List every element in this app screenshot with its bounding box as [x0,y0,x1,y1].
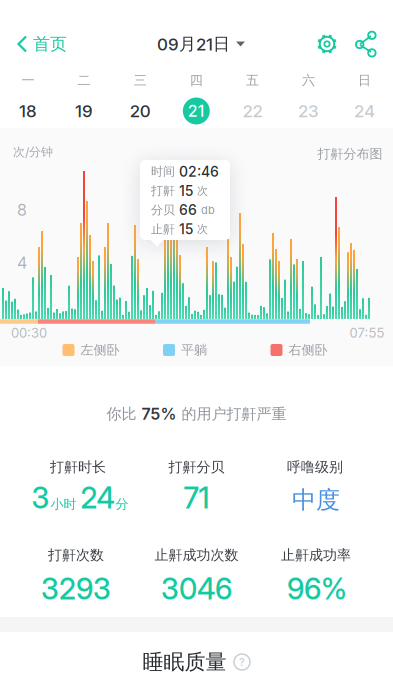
button[interactable]: 三 [112,65,168,131]
staticText: 中度 [292,485,340,515]
staticText: 20 [130,101,151,121]
staticText: 21 [188,101,205,120]
staticText: 六 [302,72,315,88]
staticText: 打鼾分布图 [317,146,382,162]
staticText: 4 [17,254,27,272]
staticText: 次/分钟 [13,145,53,159]
staticText: 8 [17,201,27,219]
staticText: db [201,203,215,216]
staticText: 时间 [151,164,175,179]
staticText: ? [239,655,245,668]
button[interactable]: 四 [168,65,224,131]
button[interactable]: 六 [280,65,336,131]
staticText: 打鼾次数 [48,546,104,564]
staticText: 你比 [106,405,136,423]
staticText: 呼噜级别 [287,458,343,476]
staticText: 次 [197,222,208,236]
staticText: 66 [179,202,197,218]
staticText: 3293 [41,572,111,606]
staticText: 02:46 [179,163,219,180]
button[interactable]: ? [233,653,250,670]
staticText: 止鼾成功次数 [154,546,238,564]
staticText: 15 [179,182,193,199]
staticText: 24 [80,481,114,515]
staticText: 71 [183,481,209,515]
button[interactable] [349,27,383,61]
button[interactable] [310,27,344,61]
staticText: 止鼾成功率 [281,546,351,564]
staticText: 首页 [33,34,67,54]
staticText: 右侧卧 [288,342,327,358]
staticText: 22 [242,101,262,121]
staticText: 打鼾时长 [50,458,106,476]
staticText: 15 [179,221,193,237]
staticText: 四 [190,72,203,88]
staticText: 日 [358,72,371,88]
staticText: 19 [75,101,93,121]
staticText: 次 [197,184,208,197]
staticText: 小时 [50,496,76,512]
staticText: 07:55 [349,325,384,341]
staticText: 23 [298,101,319,121]
button[interactable]: 二 [56,65,112,131]
staticText: 18 [19,101,37,121]
staticText: 睡眠质量 [142,649,226,675]
button[interactable]: 首页 [9,27,67,61]
staticText: 24 [354,101,375,121]
staticText: 分贝 [151,203,175,217]
staticText: 一 [21,72,34,88]
staticText: 3046 [161,572,232,606]
staticText: 打鼾分贝 [168,458,224,476]
staticText: 二 [78,72,91,88]
staticText: 00:30 [11,325,47,341]
staticText: 打鼾 [151,183,175,198]
staticText: 左侧卧 [80,342,119,358]
staticText: 三 [134,72,147,88]
staticText: 止鼾 [151,222,175,236]
staticText: 分 [115,496,128,512]
staticText: 96% [287,572,347,606]
staticText: 09月21日 [157,34,230,54]
button[interactable]: 日 [337,65,393,131]
staticText: 平躺 [181,342,207,358]
button[interactable]: 五 [224,65,280,131]
staticText: 的用户打鼾严重 [181,405,286,423]
staticText: 75% [141,405,176,423]
staticText: 3 [31,481,49,515]
button[interactable]: 09月21日 [157,34,245,54]
button[interactable]: 一 [0,65,56,131]
staticText: 五 [246,72,259,88]
